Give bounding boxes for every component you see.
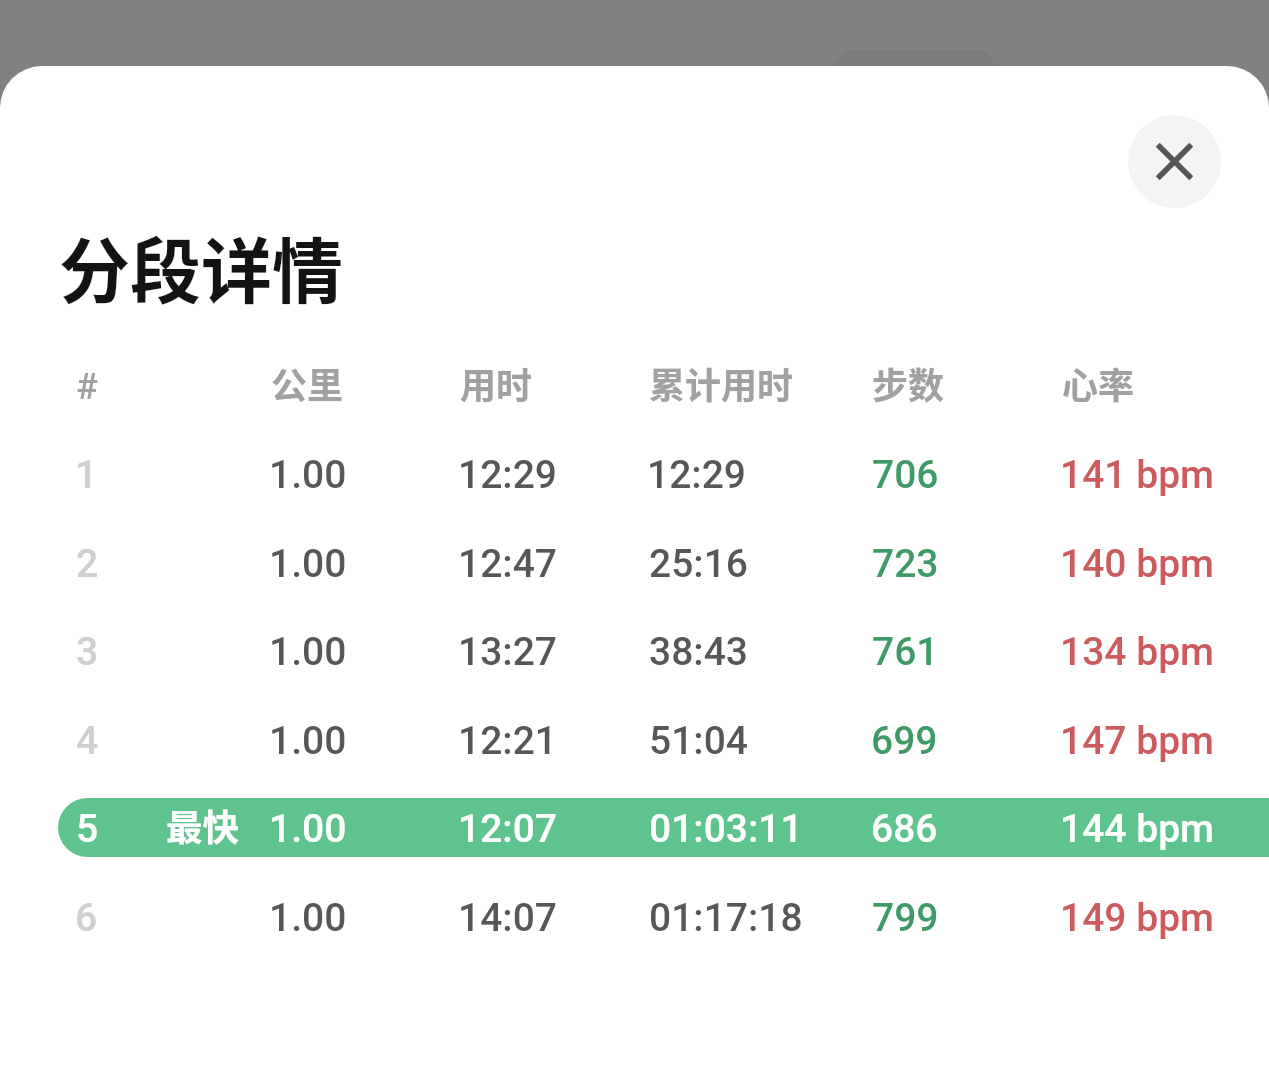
button[interactable]: 4 <box>58 710 1269 769</box>
staticText: 141 bpm <box>1060 452 1215 498</box>
staticText: 38:43 <box>649 629 749 675</box>
staticText: 12:29 <box>647 452 747 498</box>
button[interactable]: 1 <box>58 444 1269 503</box>
staticText: 147 bpm <box>1060 718 1215 764</box>
staticText: # <box>76 366 98 408</box>
staticText: 累计用时 <box>649 357 794 409</box>
staticText: 686 <box>871 806 938 852</box>
staticText: 1.00 <box>269 629 347 675</box>
button[interactable]: 5 <box>58 798 1269 857</box>
staticText: 步数 <box>872 357 945 409</box>
button[interactable]: 3 <box>58 621 1269 680</box>
staticText: 01:03:11 <box>649 806 803 852</box>
staticText: 12:07 <box>458 806 558 852</box>
staticText: 1.00 <box>269 718 347 764</box>
staticText: 6 <box>75 895 98 941</box>
staticText: 706 <box>872 452 939 498</box>
staticText: 134 bpm <box>1060 629 1215 675</box>
staticText: 723 <box>872 541 939 587</box>
staticText: 699 <box>871 718 938 764</box>
staticText: 144 bpm <box>1060 806 1215 852</box>
staticText: 12:29 <box>458 452 558 498</box>
staticText: 1 <box>75 452 98 498</box>
staticText: 12:21 <box>458 718 558 764</box>
staticText: 01:17:18 <box>649 895 803 941</box>
button[interactable]: 6 <box>58 887 1269 946</box>
staticText: 1.00 <box>269 541 347 587</box>
staticText: 51:04 <box>649 718 749 764</box>
staticText: 25:16 <box>649 541 749 587</box>
staticText: 12:47 <box>458 541 558 587</box>
staticText: 1.00 <box>269 806 347 852</box>
staticText: 1.00 <box>269 452 347 498</box>
staticText: 799 <box>872 895 939 941</box>
staticText: 149 bpm <box>1060 895 1215 941</box>
staticText: 761 <box>872 629 939 675</box>
button[interactable]: 2 <box>58 533 1269 592</box>
staticText: 4 <box>76 718 99 764</box>
button[interactable]: Close <box>1128 115 1221 208</box>
staticText: 14:07 <box>458 895 558 941</box>
staticText: 分段详情 <box>59 215 344 318</box>
staticText: 140 bpm <box>1060 541 1215 587</box>
staticText: 心率 <box>1062 357 1135 409</box>
staticText: 公里 <box>271 357 344 409</box>
staticText: 5 <box>76 806 99 852</box>
staticText: 13:27 <box>458 629 558 675</box>
staticText: 最快 <box>166 799 239 852</box>
staticText: 2 <box>76 541 99 587</box>
staticText: 3 <box>76 629 99 675</box>
staticText: 用时 <box>460 357 533 409</box>
staticText: 1.00 <box>269 895 347 941</box>
